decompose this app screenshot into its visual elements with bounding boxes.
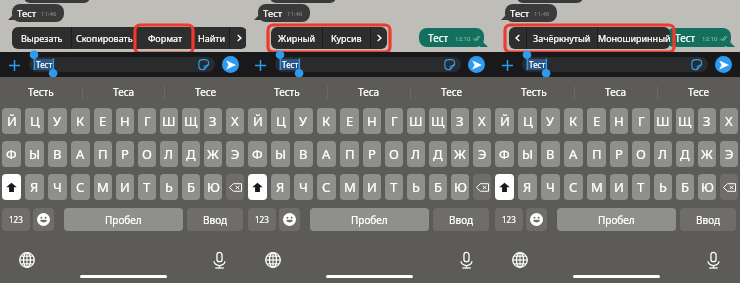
button[interactable]: Я: [271, 174, 290, 200]
button[interactable]: Теса: [575, 77, 657, 107]
button[interactable]: Ь: [407, 174, 425, 200]
button[interactable]: Тесе: [165, 77, 246, 107]
button[interactable]: Тесть: [0, 77, 82, 107]
button[interactable]: Тесе: [658, 77, 740, 107]
button[interactable]: Б: [676, 174, 694, 200]
button[interactable]: Change language: [263, 250, 283, 270]
button[interactable]: Х: [226, 108, 244, 134]
button[interactable]: Change language: [17, 250, 37, 270]
button[interactable]: 123: [2, 208, 30, 231]
button[interactable]: Ч: [541, 174, 560, 200]
button[interactable]: Тесть: [246, 77, 327, 107]
button[interactable]: В: [541, 141, 560, 167]
button[interactable]: Ч: [294, 174, 313, 200]
button[interactable]: Ы: [518, 141, 537, 167]
button[interactable]: Н: [116, 108, 134, 134]
button[interactable]: Г: [385, 108, 403, 134]
button[interactable]: Пробел: [557, 208, 676, 231]
button[interactable]: Скопировать: [72, 27, 136, 49]
button[interactable]: Э: [226, 141, 244, 167]
button[interactable]: Ш: [160, 108, 178, 134]
button[interactable]: Ж: [451, 141, 469, 167]
button[interactable]: Ь: [160, 174, 178, 200]
button[interactable]: Ввод: [680, 208, 736, 231]
button[interactable]: Э: [473, 141, 491, 167]
button[interactable]: Й: [495, 108, 514, 134]
button[interactable]: П: [340, 141, 359, 167]
button[interactable]: Г: [138, 108, 156, 134]
button[interactable]: Н: [363, 108, 381, 134]
button[interactable]: Ф: [248, 141, 267, 167]
button[interactable]: И: [610, 174, 628, 200]
button[interactable]: У: [541, 108, 560, 134]
button[interactable]: Р: [610, 141, 628, 167]
button[interactable]: К: [71, 108, 90, 134]
button[interactable]: Ю: [204, 174, 222, 200]
button[interactable]: Change language: [510, 250, 530, 270]
button[interactable]: More options: [371, 27, 387, 49]
button[interactable]: Ш: [654, 108, 672, 134]
button[interactable]: Ш: [407, 108, 425, 134]
button[interactable]: О: [385, 141, 403, 167]
button[interactable]: Тест: [522, 57, 708, 72]
button[interactable]: Backspace: [226, 174, 244, 200]
button[interactable]: Send: [222, 56, 239, 73]
button[interactable]: М: [587, 174, 606, 200]
button[interactable]: С: [317, 174, 336, 200]
button[interactable]: Тест: [275, 57, 461, 72]
button[interactable]: Л: [407, 141, 425, 167]
button[interactable]: Т: [138, 174, 156, 200]
button[interactable]: О: [632, 141, 650, 167]
button[interactable]: Теса: [83, 77, 164, 107]
button[interactable]: Ц: [25, 108, 44, 134]
button[interactable]: Ю: [698, 174, 716, 200]
button[interactable]: С: [564, 174, 583, 200]
button[interactable]: Р: [116, 141, 134, 167]
button[interactable]: Г: [632, 108, 650, 134]
button[interactable]: Ы: [25, 141, 44, 167]
button[interactable]: Ввод: [433, 208, 489, 231]
button[interactable]: У: [48, 108, 67, 134]
button[interactable]: П: [587, 141, 606, 167]
button[interactable]: Щ: [676, 108, 694, 134]
button[interactable]: Формат: [137, 27, 193, 49]
button[interactable]: Send: [715, 56, 732, 73]
button[interactable]: А: [317, 141, 336, 167]
button[interactable]: Л: [160, 141, 178, 167]
button[interactable]: Backspace: [473, 174, 491, 200]
button[interactable]: Тесть: [493, 77, 574, 107]
button[interactable]: Attach: [251, 56, 269, 74]
button[interactable]: Shift: [2, 174, 21, 200]
button[interactable]: Пробел: [64, 208, 183, 231]
button[interactable]: Д: [676, 141, 694, 167]
button[interactable]: Ч: [48, 174, 67, 200]
button[interactable]: Ю: [451, 174, 469, 200]
button[interactable]: Attach: [498, 56, 516, 74]
button[interactable]: Щ: [182, 108, 200, 134]
button[interactable]: З: [451, 108, 469, 134]
button[interactable]: Теса: [328, 77, 410, 107]
button[interactable]: Тест: [29, 57, 215, 72]
button[interactable]: В: [294, 141, 313, 167]
button[interactable]: Х: [473, 108, 491, 134]
button[interactable]: Вырезать: [12, 27, 71, 49]
button[interactable]: Emoji: [33, 208, 54, 231]
button[interactable]: И: [363, 174, 381, 200]
button[interactable]: Emoji: [279, 208, 300, 231]
button[interactable]: Я: [518, 174, 537, 200]
button[interactable]: Ы: [271, 141, 290, 167]
button[interactable]: К: [564, 108, 583, 134]
button[interactable]: Е: [587, 108, 606, 134]
button[interactable]: Ц: [518, 108, 537, 134]
button[interactable]: Ц: [271, 108, 290, 134]
button[interactable]: Й: [248, 108, 267, 134]
button[interactable]: Voice input: [456, 250, 476, 270]
button[interactable]: У: [294, 108, 313, 134]
button[interactable]: Shift: [495, 174, 514, 200]
button[interactable]: О: [138, 141, 156, 167]
button[interactable]: Ь: [654, 174, 672, 200]
button[interactable]: Ж: [698, 141, 716, 167]
button[interactable]: Тесе: [411, 77, 493, 107]
button[interactable]: Send: [468, 56, 485, 73]
button[interactable]: Курсив: [323, 27, 370, 49]
